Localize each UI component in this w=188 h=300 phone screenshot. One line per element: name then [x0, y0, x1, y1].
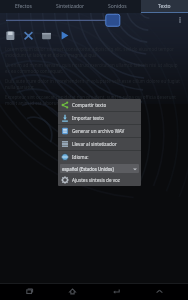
- button[interactable]: español (Estados Unidos): [60, 164, 139, 173]
- staticText: español (Estados Unidos): [62, 166, 114, 172]
- button[interactable]: Recientes: [14, 283, 44, 300]
- button[interactable]: Más opciones: [175, 15, 185, 25]
- button[interactable]: Mezclar: [22, 29, 35, 42]
- button[interactable]: Llevar al sintetizador: [58, 138, 141, 150]
- button[interactable]: Inicio: [57, 283, 87, 300]
- staticText: Importar texto: [72, 115, 104, 121]
- button[interactable]: Sintetizador: [47, 0, 94, 13]
- staticText: Ut enim ad minim veniam, quis nostrud ex…: [5, 62, 183, 74]
- staticText: Ajustes síntesis de voz: [72, 177, 120, 183]
- staticText: Idioma:: [72, 154, 89, 160]
- button[interactable]: Velocidad: [0, 13, 188, 27]
- button[interactable]: Atrás: [101, 283, 131, 300]
- staticText: Duis aute irure dolor in reprehenderit i…: [5, 78, 183, 90]
- button[interactable]: Sonidos: [94, 0, 141, 13]
- button[interactable]: Ajustes síntesis de voz: [58, 174, 141, 186]
- button[interactable]: Compartir texto: [58, 99, 141, 111]
- staticText: Llevar al sintetizador: [72, 141, 117, 147]
- staticText: Sonidos: [108, 3, 127, 10]
- button[interactable]: Texto: [141, 0, 188, 13]
- staticText: Texto: [158, 3, 171, 10]
- button[interactable]: Importar texto: [58, 112, 141, 124]
- staticText: Sintetizador: [56, 3, 85, 10]
- staticText: Generar un archivo WAV: [72, 128, 125, 134]
- button[interactable]: Reproducir: [58, 29, 71, 42]
- staticText: Compartir texto: [72, 102, 107, 108]
- button[interactable]: Guardar: [4, 29, 17, 42]
- button[interactable]: Idioma:: [58, 151, 141, 163]
- staticText: Efectos: [15, 3, 32, 10]
- button[interactable]: Carpeta: [40, 29, 53, 42]
- button[interactable]: Expandir: [144, 283, 174, 300]
- staticText: Excepteur sint occaecat cupidatat non pr…: [5, 94, 183, 106]
- button[interactable]: Efectos: [0, 0, 47, 13]
- button[interactable]: Generar un archivo WAV: [58, 125, 141, 137]
- staticText: Lorem ipsum dolor sit amet, consectetur …: [5, 46, 183, 58]
